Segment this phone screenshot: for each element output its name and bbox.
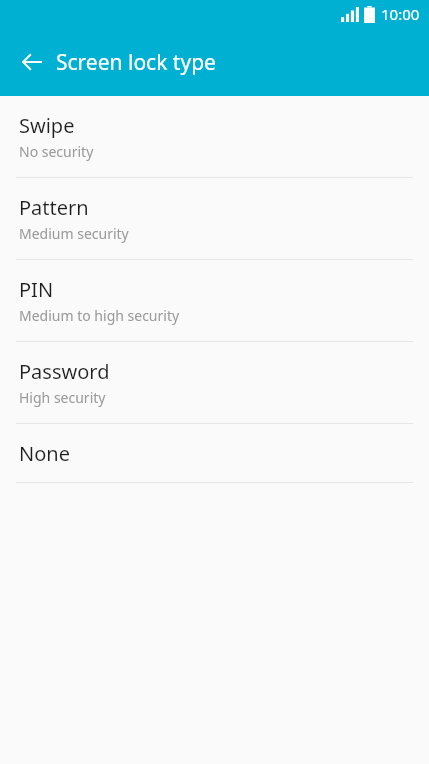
staticText: Screen lock type bbox=[56, 48, 216, 77]
staticText: Medium to high security bbox=[19, 306, 180, 325]
button[interactable]: Swipe bbox=[0, 96, 429, 177]
staticText: 10:00 bbox=[381, 4, 420, 24]
staticText: Swipe bbox=[19, 112, 75, 139]
staticText: Pattern bbox=[19, 194, 89, 221]
staticText: None bbox=[19, 440, 70, 467]
staticText: Password bbox=[19, 358, 110, 385]
button[interactable]: Navigate up bbox=[11, 41, 53, 83]
staticText: Medium security bbox=[19, 224, 129, 243]
button[interactable]: None bbox=[0, 424, 429, 482]
button[interactable]: Password bbox=[0, 342, 429, 423]
staticText: PIN bbox=[19, 276, 54, 303]
button[interactable]: PIN bbox=[0, 260, 429, 341]
staticText: No security bbox=[19, 142, 94, 161]
staticText: High security bbox=[19, 388, 106, 407]
button[interactable]: Pattern bbox=[0, 178, 429, 259]
